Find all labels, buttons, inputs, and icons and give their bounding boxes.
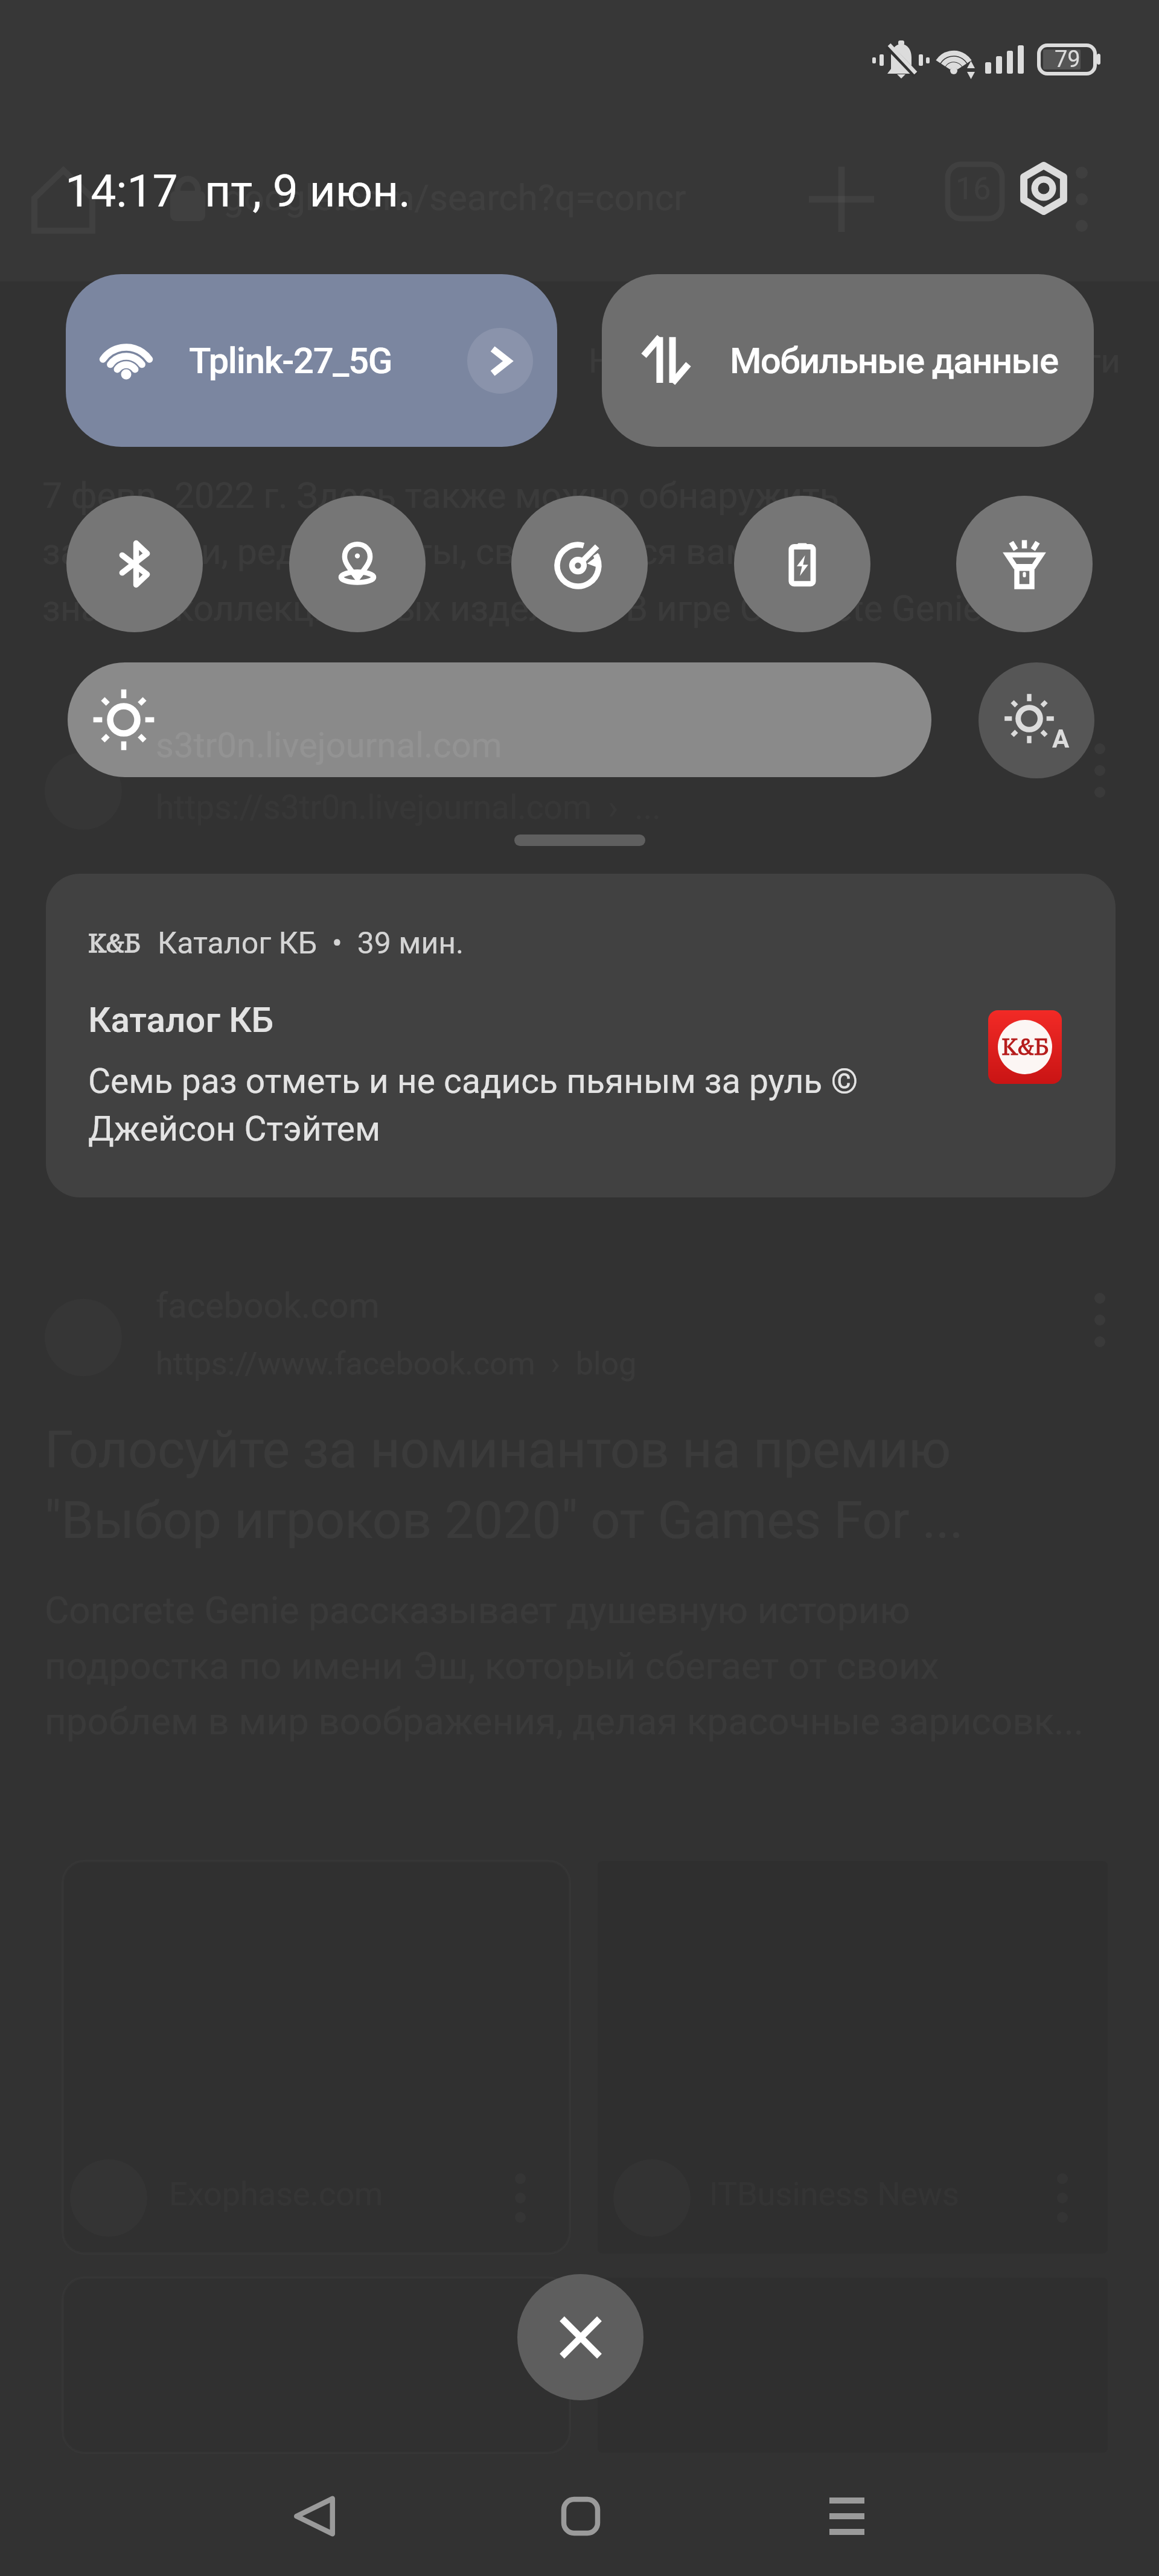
staticText: 7 февр. 2022 г. Здесь также можно обнару…: [42, 475, 982, 630]
staticText: Покупки: [815, 341, 950, 381]
staticText: s3tr0n.livejournal.com: [156, 725, 502, 766]
staticText: Каталог КБ • 39 мин.: [158, 926, 464, 961]
button[interactable]: Home: [520, 2456, 641, 2576]
button[interactable]: Data saver: [511, 496, 648, 632]
button[interactable]: Location: [289, 496, 426, 632]
staticText: 79: [1055, 46, 1081, 73]
staticText: Мобильные данные: [730, 339, 1058, 382]
button[interactable]: Auto brightness: [979, 662, 1094, 778]
staticText: Tplink-27_5G: [189, 339, 392, 382]
button[interactable]: Brightness: [68, 662, 931, 777]
staticText: Книги: [1026, 341, 1120, 381]
staticText: К&Б: [1001, 1034, 1049, 1060]
button[interactable]: Expand: [514, 835, 645, 846]
staticText: Каталог КБ: [88, 999, 274, 1040]
button[interactable]: Tplink-27_5G: [66, 274, 557, 447]
button[interactable]: Recent apps: [787, 2456, 907, 2576]
staticText: Новости: [589, 341, 724, 381]
button[interactable]: К&Б: [46, 874, 1116, 1197]
button[interactable]: Clear all notifications: [517, 2274, 643, 2400]
staticText: Голосуйте за номинантов на премию "Выбор…: [45, 1419, 963, 1551]
staticText: 14:17: [65, 164, 178, 217]
button[interactable]: Back: [254, 2456, 375, 2576]
staticText: A: [1052, 724, 1070, 754]
staticText: К&Б: [88, 929, 141, 958]
button[interactable]: Battery saver: [734, 496, 870, 632]
button[interactable]: Wi-Fi settings: [467, 328, 533, 394]
staticText: google.com/search?q=concr: [223, 176, 686, 219]
button[interactable]: Flashlight: [956, 496, 1093, 632]
staticText: Семь раз отметь и не садись пьяным за ру…: [88, 1061, 858, 1149]
button[interactable]: Bluetooth: [66, 496, 203, 632]
staticText: пт, 9 июн.: [205, 164, 411, 217]
button[interactable]: Settings: [999, 144, 1088, 233]
button[interactable]: Мобильные данные: [602, 274, 1094, 447]
